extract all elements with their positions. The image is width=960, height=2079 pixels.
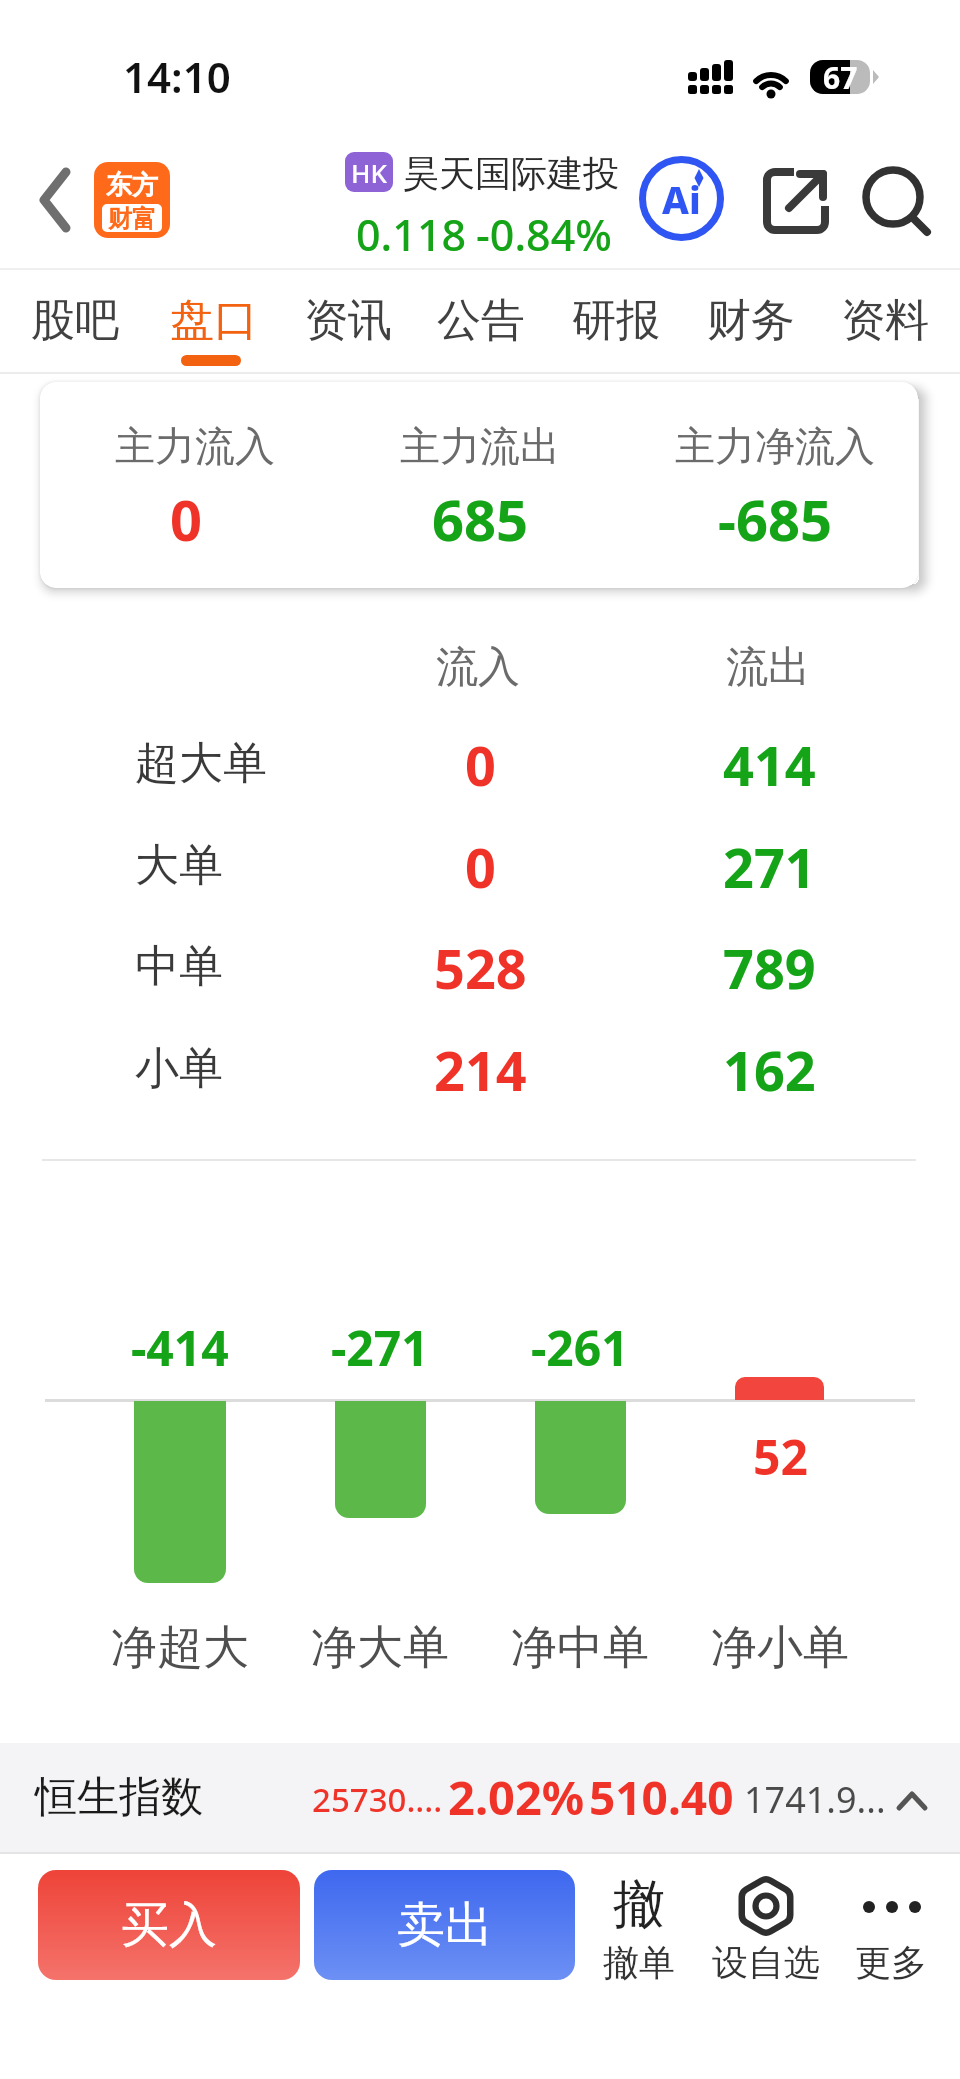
staticText: 214 [434,1033,527,1107]
button[interactable]: 资料 [830,280,940,360]
button[interactable] [850,1868,940,1986]
staticText: -261 [531,1315,629,1380]
staticText: 更多 [855,1940,927,1985]
button[interactable] [720,1868,812,1986]
staticText: 主力流入 [115,421,275,471]
button[interactable]: 财务 [696,280,806,360]
staticText: 盘口 [170,293,258,348]
staticText: 买入 [121,1895,217,1955]
staticText: 流出 [726,641,810,694]
staticText: 股吧 [31,293,119,348]
staticText: 研报 [572,293,660,348]
staticText: 净超大 [111,1619,249,1677]
staticText: 67 [823,57,858,98]
staticText: 0.118 [356,205,467,264]
button[interactable]: 盘口 [159,280,269,360]
staticText: 2.02% [448,1765,585,1829]
staticText: 超大单 [135,736,267,791]
button[interactable] [856,160,936,240]
staticText: 14:10 [123,48,231,105]
staticText: -0.84% [476,205,612,264]
staticText: 卖出 [397,1895,493,1955]
staticText: 大单 [135,838,223,893]
staticText: 净中单 [511,1619,649,1677]
button[interactable] [28,160,88,240]
button[interactable]: 公告 [426,280,536,360]
button[interactable]: Ai [638,155,725,242]
staticText: 25730.... [312,1777,443,1822]
staticText: -685 [718,481,833,557]
staticText: 小单 [135,1041,223,1096]
staticText: 162 [723,1033,816,1107]
staticText: Ai [662,173,701,225]
staticText: 净小单 [711,1619,849,1677]
staticText: 财富 [108,204,156,232]
staticText: 789 [723,931,816,1005]
button[interactable] [756,162,836,242]
staticText: 0 [465,728,496,802]
staticText: -414 [131,1315,229,1380]
button[interactable]: 卖出 [314,1870,575,1980]
staticText: 510.40 [589,1766,734,1829]
button[interactable]: 东方 [94,162,170,238]
staticText: 公告 [437,293,525,348]
staticText: 恒生指数 [35,1771,203,1824]
staticText: 设自选 [712,1940,820,1985]
staticText: 东方 [106,169,158,202]
staticText: 0 [465,830,496,904]
staticText: -271 [331,1315,429,1380]
staticText: HK [351,155,387,190]
button[interactable]: 资讯 [293,280,403,360]
staticText: 271 [723,830,816,904]
staticText: 685 [432,481,529,557]
staticText: 主力流出 [400,421,560,471]
button[interactable]: 研报 [561,280,671,360]
staticText: 52 [753,1424,808,1489]
staticText: 414 [723,728,816,802]
staticText: 撤 [613,1872,665,1938]
staticText: 1741.9... [744,1775,886,1824]
staticText: 撤单 [603,1940,675,1985]
staticText: 流入 [436,641,520,694]
staticText: 资讯 [304,293,392,348]
button[interactable] [0,1743,960,1852]
staticText: 财务 [707,293,795,348]
button[interactable] [598,1868,682,1986]
staticText: 主力净流入 [675,421,875,471]
button[interactable]: 买入 [38,1870,300,1980]
staticText: 净大单 [311,1619,449,1677]
staticText: 中单 [135,939,223,994]
staticText: 528 [434,931,527,1005]
staticText: 0 [170,481,203,557]
staticText: 昊天国际建投 [403,151,619,196]
staticText: 资料 [841,293,929,348]
button[interactable]: 股吧 [20,280,130,360]
